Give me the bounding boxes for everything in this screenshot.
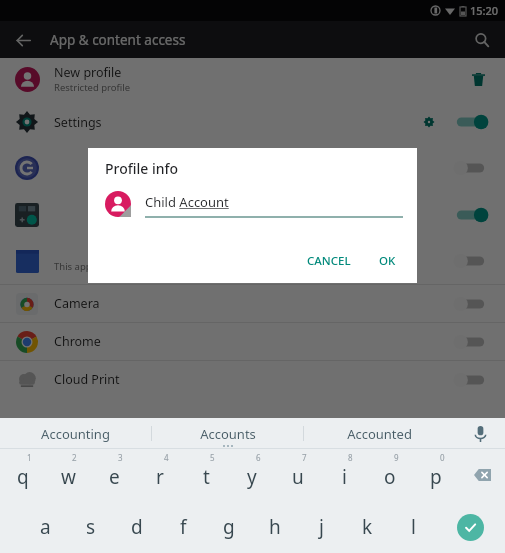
staticText: k bbox=[362, 514, 373, 540]
staticText: 2 bbox=[72, 452, 77, 463]
staticText: Chrome bbox=[54, 333, 101, 350]
button[interactable]: 1 bbox=[0, 449, 45, 501]
button[interactable]: Accounted bbox=[304, 418, 455, 449]
button[interactable]: 3 bbox=[91, 449, 137, 501]
button[interactable]: d bbox=[114, 501, 160, 553]
button[interactable]: Off bbox=[453, 293, 491, 315]
staticText: Restricted profile bbox=[54, 81, 131, 94]
staticText: 1 bbox=[27, 452, 32, 463]
staticText: Profile info bbox=[105, 159, 179, 178]
staticText: h bbox=[269, 514, 281, 540]
button[interactable]: Off bbox=[453, 331, 491, 353]
button[interactable]: Delete bbox=[465, 66, 491, 92]
staticText: CANCEL bbox=[307, 253, 351, 269]
staticText: u bbox=[292, 464, 304, 490]
staticText: Accounted bbox=[347, 425, 412, 443]
button[interactable]: Enter bbox=[436, 501, 505, 553]
button[interactable]: h bbox=[252, 501, 298, 553]
button[interactable]: 0 bbox=[413, 449, 459, 501]
button[interactable]: Voice input bbox=[455, 418, 505, 449]
staticText: 15:20 bbox=[470, 3, 499, 18]
staticText: Child Account bbox=[145, 193, 229, 211]
button[interactable]: Settings options bbox=[417, 110, 441, 134]
button[interactable]: j bbox=[298, 501, 344, 553]
staticText: g bbox=[223, 514, 235, 540]
button[interactable]: Cloud Print bbox=[0, 361, 505, 398]
staticText: 6 bbox=[256, 452, 261, 463]
button[interactable]: Off bbox=[453, 250, 491, 272]
button[interactable]: Camera bbox=[0, 285, 505, 322]
button[interactable]: k bbox=[344, 501, 390, 553]
staticText: p bbox=[430, 464, 442, 490]
button[interactable]: Backspace bbox=[459, 449, 505, 501]
button[interactable]: OK bbox=[372, 248, 403, 274]
staticText: d bbox=[131, 514, 143, 540]
button[interactable]: Off bbox=[453, 369, 491, 391]
button[interactable]: On bbox=[453, 111, 491, 133]
button[interactable]: On bbox=[0, 191, 505, 238]
button[interactable]: a bbox=[22, 501, 68, 553]
staticText: This app is not supported in restricted … bbox=[54, 260, 260, 273]
staticText: e bbox=[109, 464, 120, 490]
staticText: a bbox=[40, 514, 51, 540]
staticText: 3 bbox=[118, 452, 123, 463]
button[interactable]: 2 bbox=[45, 449, 91, 501]
staticText: f bbox=[180, 514, 187, 540]
staticText: s bbox=[86, 514, 96, 540]
staticText: Accounts bbox=[200, 425, 256, 443]
staticText: i bbox=[342, 464, 347, 490]
button[interactable]: f bbox=[160, 501, 206, 553]
staticText: 8 bbox=[348, 452, 353, 463]
button[interactable]: 4 bbox=[137, 449, 183, 501]
staticText: 7 bbox=[302, 452, 307, 463]
staticText: q bbox=[17, 464, 29, 490]
staticText: Cloud Print bbox=[54, 371, 120, 388]
button[interactable]: Search bbox=[465, 23, 499, 57]
staticText: Accounting bbox=[41, 425, 110, 443]
button[interactable]: Back bbox=[6, 23, 40, 57]
button[interactable]: 9 bbox=[367, 449, 413, 501]
button[interactable]: 5 bbox=[183, 449, 229, 501]
staticText: 0 bbox=[440, 452, 445, 463]
button[interactable]: CANCEL bbox=[300, 248, 358, 274]
button[interactable]: Off bbox=[0, 144, 505, 191]
button[interactable]: Settings bbox=[0, 100, 505, 144]
staticText: Camera bbox=[54, 295, 100, 312]
staticText: 4 bbox=[164, 452, 169, 463]
staticText: 9 bbox=[394, 452, 399, 463]
button[interactable]: New profile bbox=[0, 58, 505, 100]
button[interactable]: Accounting bbox=[0, 418, 151, 449]
staticText: Settings bbox=[54, 114, 102, 131]
staticText: t bbox=[203, 464, 210, 490]
staticText: w bbox=[61, 464, 76, 490]
staticText: l bbox=[411, 514, 416, 540]
staticText: j bbox=[319, 514, 324, 540]
button[interactable]: 6 bbox=[229, 449, 275, 501]
button[interactable]: On bbox=[453, 204, 491, 226]
button[interactable]: Off bbox=[453, 157, 491, 179]
staticText: New profile bbox=[54, 64, 122, 81]
button[interactable]: This app is not supported in restricted … bbox=[0, 238, 505, 284]
staticText: 5 bbox=[210, 452, 215, 463]
button[interactable]: l bbox=[390, 501, 436, 553]
staticText: r bbox=[156, 464, 164, 490]
button[interactable]: Accounts bbox=[152, 418, 303, 449]
button[interactable]: s bbox=[68, 501, 114, 553]
button[interactable]: 8 bbox=[321, 449, 367, 501]
staticText: o bbox=[384, 464, 396, 490]
staticText: OK bbox=[379, 253, 396, 269]
button[interactable]: Chrome bbox=[0, 323, 505, 360]
staticText: App & content access bbox=[50, 31, 186, 49]
button[interactable]: g bbox=[206, 501, 252, 553]
staticText: y bbox=[247, 464, 257, 490]
button[interactable]: 7 bbox=[275, 449, 321, 501]
button[interactable]: Change profile picture bbox=[105, 191, 131, 217]
